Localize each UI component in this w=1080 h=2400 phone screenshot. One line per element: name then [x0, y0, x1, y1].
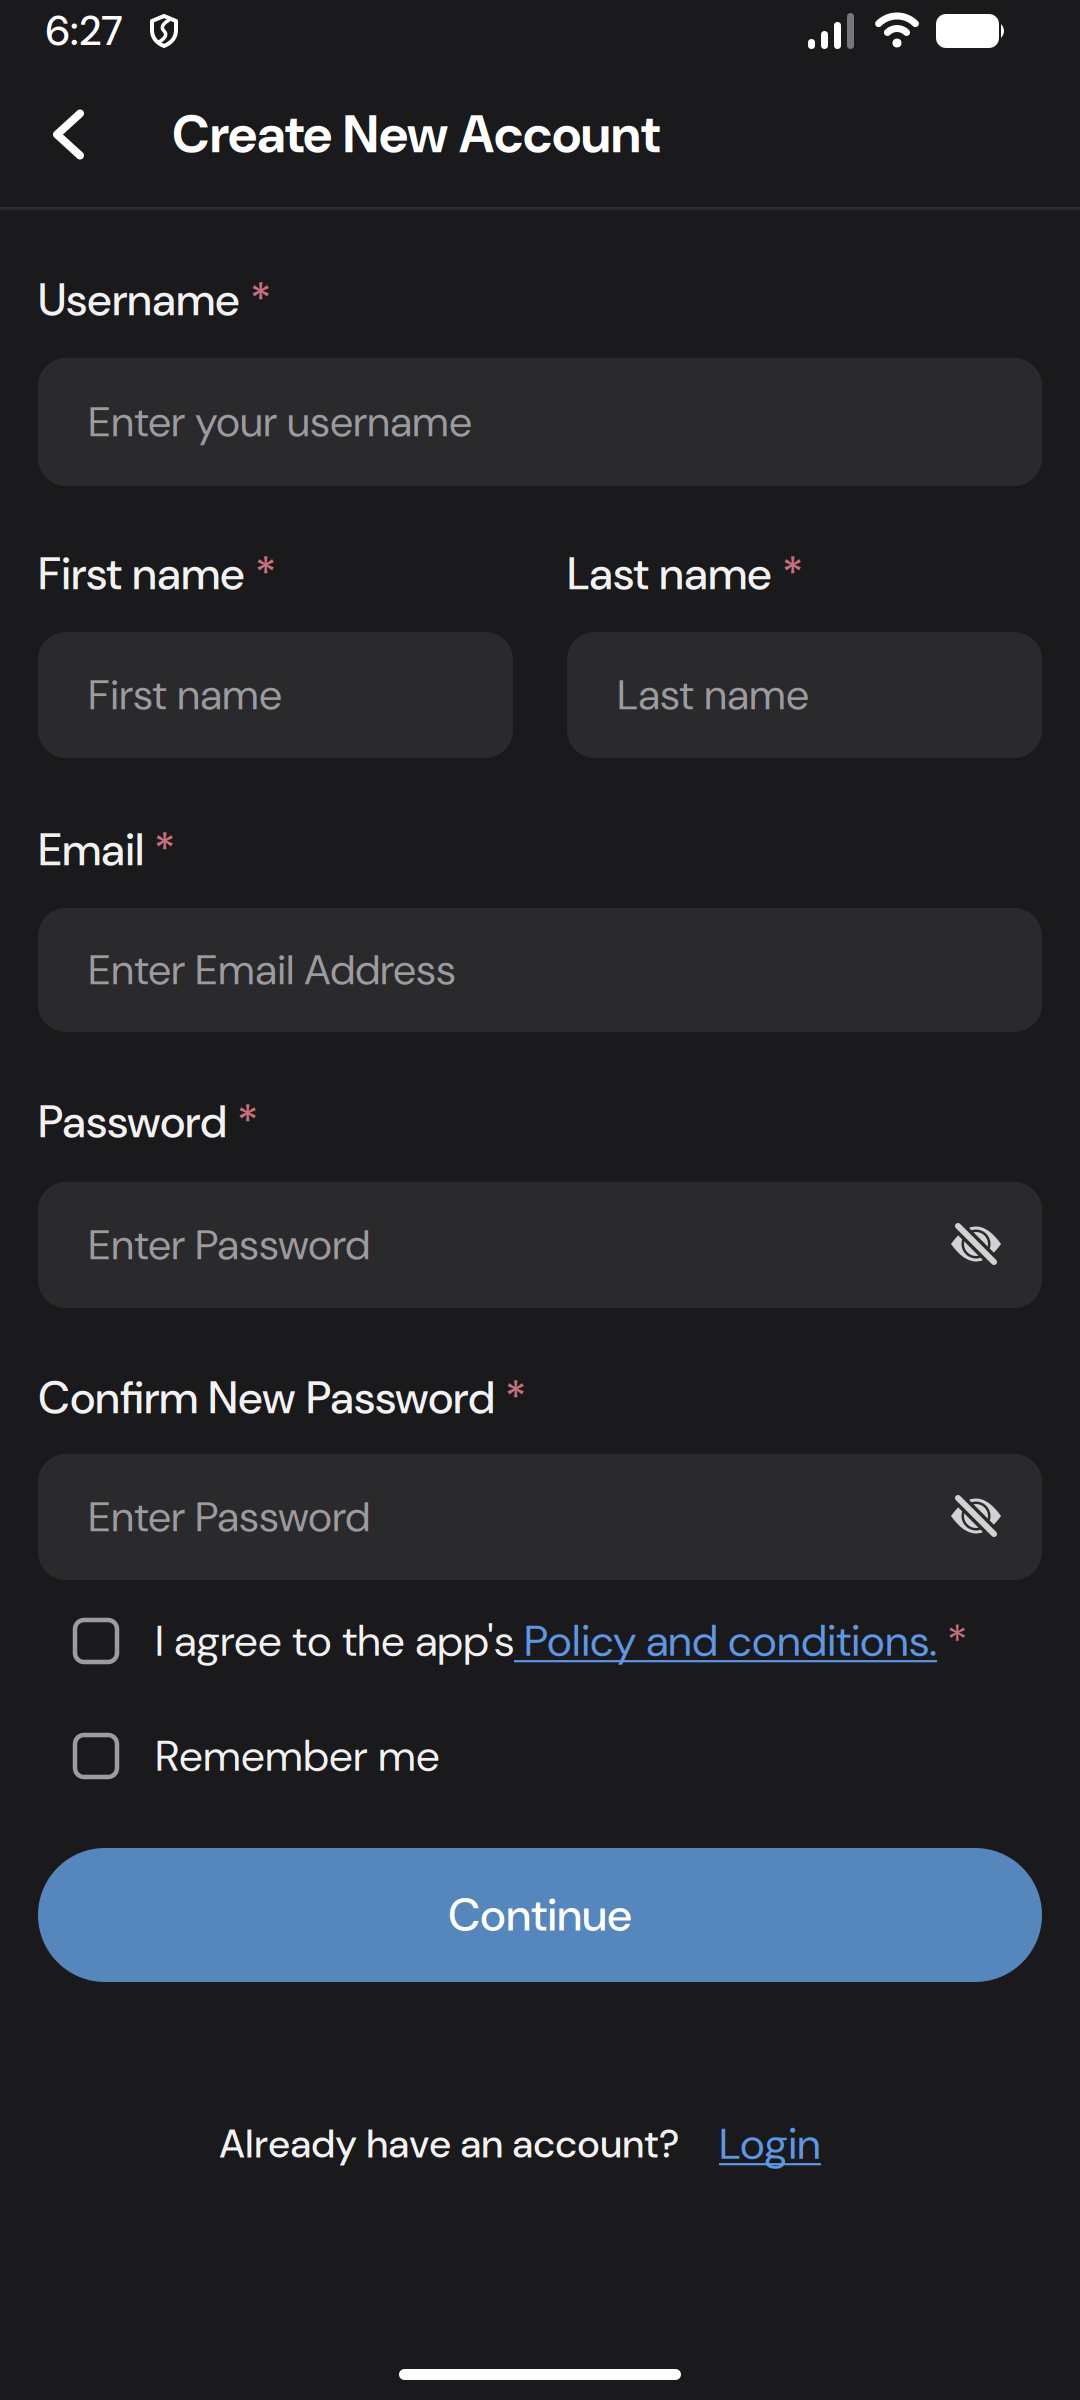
button[interactable]: Show password	[950, 1219, 1002, 1271]
staticText: First name	[88, 668, 282, 722]
staticText: Enter Email Address	[88, 943, 456, 997]
button[interactable]: Enter Password	[38, 1182, 1042, 1308]
button[interactable]: Policy and conditions.	[514, 1613, 937, 1669]
staticText: *	[255, 545, 276, 603]
staticText: Continue	[448, 1885, 632, 1944]
button[interactable]: First name	[38, 632, 513, 758]
staticText: *	[937, 1613, 967, 1669]
button[interactable]: Last name	[567, 632, 1042, 758]
staticText: Username	[38, 271, 240, 329]
staticText: *	[250, 271, 271, 329]
button[interactable]: Enter Email Address	[38, 908, 1042, 1032]
staticText: *	[154, 821, 175, 879]
staticText: *	[782, 545, 803, 603]
staticText: Enter Password	[88, 1218, 370, 1272]
staticText: *	[237, 1093, 258, 1151]
button[interactable]: Enter your username	[38, 358, 1042, 486]
button[interactable]: Login	[719, 2116, 821, 2172]
button[interactable]: Back	[0, 109, 87, 159]
staticText: 6:27	[45, 4, 123, 58]
staticText: Password	[38, 1093, 227, 1151]
staticText: Enter Password	[88, 1490, 370, 1544]
staticText: Already have an account?	[219, 2118, 679, 2170]
staticText: I agree to the app's	[155, 1613, 514, 1669]
button[interactable]: I agree to the app's	[38, 1620, 1042, 1662]
staticText: Last name	[617, 668, 809, 722]
staticText: First name	[38, 545, 245, 603]
staticText: Create New Account	[172, 101, 660, 168]
staticText: Remember me	[155, 1728, 440, 1784]
staticText: *	[505, 1369, 526, 1427]
button[interactable]: Continue	[38, 1848, 1042, 1982]
button[interactable]: Enter Password	[38, 1454, 1042, 1580]
button[interactable]: Remember me	[38, 1735, 1042, 1777]
staticText: Enter your username	[88, 395, 472, 449]
staticText: Confirm New Password	[38, 1369, 495, 1427]
staticText: Email	[38, 821, 144, 879]
button[interactable]: Show password	[950, 1491, 1002, 1543]
staticText: Login	[719, 2116, 821, 2172]
staticText: Last name	[567, 545, 772, 603]
staticText: Policy and conditions.	[514, 1613, 937, 1669]
